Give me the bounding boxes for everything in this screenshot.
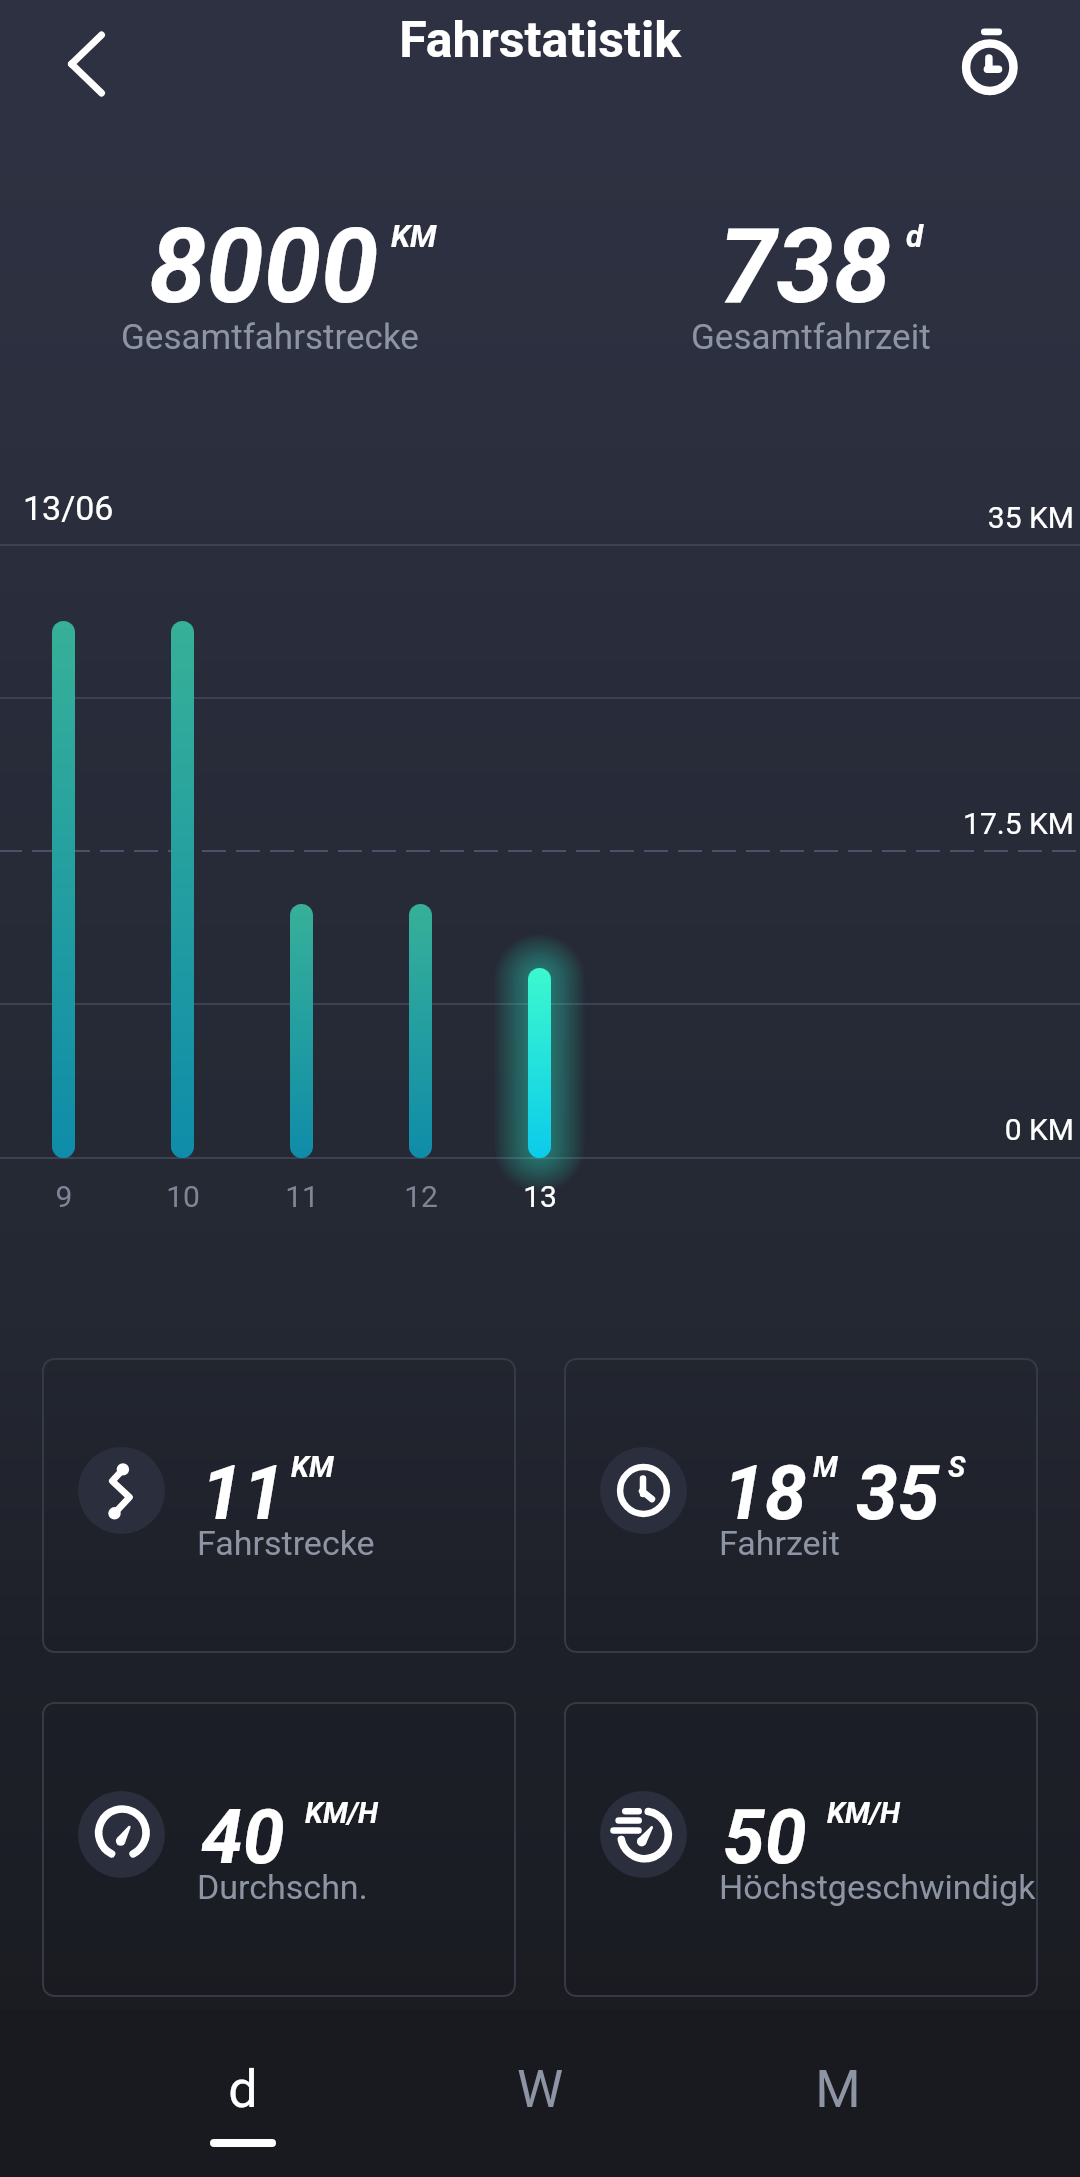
staticText: 11 bbox=[257, 1179, 347, 1214]
staticText: Fahrstatistik bbox=[0, 11, 1080, 70]
staticText: 18 bbox=[723, 1449, 807, 1537]
button[interactable]: 18 bbox=[564, 1358, 1038, 1653]
staticText: 35 KM bbox=[0, 500, 1074, 535]
staticText: KM/H bbox=[305, 1796, 378, 1830]
staticText: d bbox=[95, 2059, 391, 2120]
staticText: 0 KM bbox=[0, 1112, 1074, 1147]
staticText: 13/06 bbox=[23, 488, 114, 528]
staticText: KM bbox=[391, 218, 437, 254]
staticText: Fahrstrecke bbox=[197, 1523, 375, 1563]
staticText: KM bbox=[291, 1450, 334, 1484]
staticText: M bbox=[690, 2059, 986, 2120]
staticText: 12 bbox=[376, 1179, 466, 1214]
staticText: d bbox=[906, 218, 923, 254]
button[interactable]: 11 bbox=[42, 1358, 516, 1653]
staticText: 17.5 KM bbox=[0, 806, 1074, 841]
staticText: 35 bbox=[856, 1449, 940, 1537]
staticText: M bbox=[813, 1450, 838, 1484]
staticText: 13 bbox=[495, 1179, 585, 1214]
staticText: Gesamtfahrstrecke bbox=[121, 317, 419, 358]
staticText: KM/H bbox=[827, 1796, 900, 1830]
button[interactable]: 50 bbox=[564, 1702, 1038, 1997]
staticText: 738 bbox=[719, 206, 892, 327]
staticText: Fahrzeit bbox=[719, 1523, 840, 1563]
staticText: 10 bbox=[138, 1179, 228, 1214]
staticText: 11 bbox=[201, 1449, 285, 1537]
staticText: 40 bbox=[201, 1793, 285, 1881]
staticText: Gesamtfahrzeit bbox=[691, 317, 931, 358]
button[interactable]: Back bbox=[24, 16, 120, 112]
staticText: 8000 bbox=[149, 206, 379, 327]
button[interactable]: 40 bbox=[42, 1702, 516, 1997]
button[interactable]: d bbox=[95, 2010, 391, 2177]
staticText: Höchstgeschwindigkeit bbox=[719, 1867, 1038, 1907]
staticText: 50 bbox=[723, 1793, 807, 1881]
button[interactable]: M bbox=[690, 2010, 986, 2177]
button[interactable]: W bbox=[392, 2010, 688, 2177]
staticText: S bbox=[948, 1450, 966, 1484]
staticText: W bbox=[392, 2059, 688, 2120]
staticText: 9 bbox=[19, 1179, 109, 1214]
button[interactable]: Stopwatch bbox=[944, 8, 1036, 100]
staticText: Durchschn. bbox=[197, 1867, 368, 1907]
